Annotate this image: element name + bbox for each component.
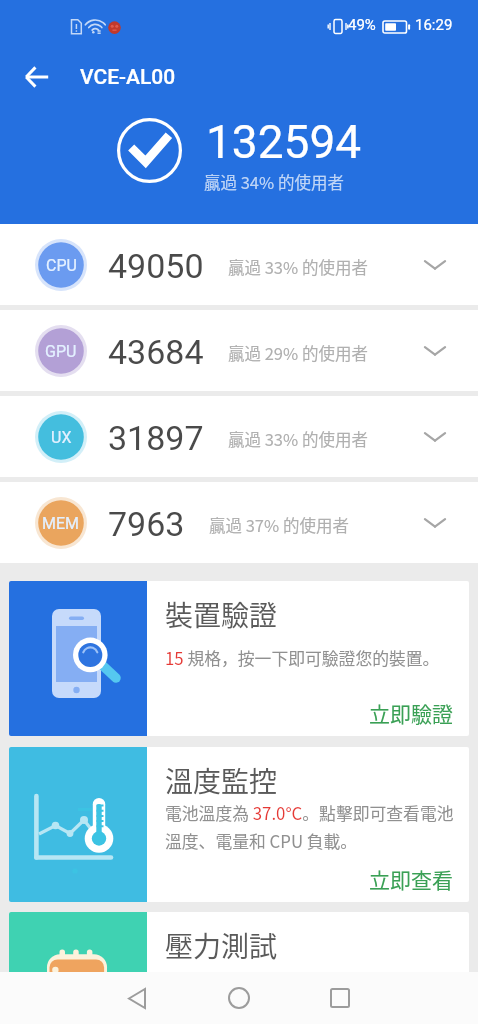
staticText: 43684 [108, 332, 204, 372]
button[interactable]: 壓力測試 [9, 912, 469, 1024]
staticText: 贏過 33% 的使用者 [228, 255, 368, 279]
button[interactable]: 裝置驗證 [9, 581, 469, 736]
button[interactable]: GPU [0, 310, 478, 391]
button[interactable]: CPU [0, 224, 478, 305]
staticText: 立即驗證 [369, 698, 453, 728]
staticText: 15 規格，按一下即可驗證您的裝置。 [165, 646, 440, 670]
staticText: 49050 [108, 246, 204, 286]
staticText: GPU [45, 342, 77, 361]
button[interactable]: Back [14, 55, 60, 99]
staticText: MEM [42, 514, 80, 533]
button[interactable]: Home [209, 978, 269, 1018]
staticText: 贏過 37% 的使用者 [209, 513, 349, 537]
staticText: 31897 [108, 418, 204, 458]
staticText: 49% [348, 16, 376, 34]
staticText: CPU [46, 256, 77, 275]
staticText: 贏過 34% 的使用者 [204, 170, 344, 194]
staticText: 壓力測試 [165, 925, 278, 966]
staticText: 溫度監控 [165, 760, 278, 801]
staticText: 16:29 [415, 16, 453, 34]
staticText: VCE-AL00 [80, 65, 176, 90]
button[interactable]: UX [0, 396, 478, 477]
staticText: 裝置驗證 [165, 594, 278, 635]
staticText: 132594 [206, 115, 362, 169]
staticText: 贏過 33% 的使用者 [228, 427, 368, 451]
staticText: 電池溫度為 37.0°C。點擊即可查看電池溫度、電量和 CPU 負載。 [165, 801, 460, 852]
button[interactable]: 溫度監控 [9, 747, 469, 902]
staticText: 立即查看 [369, 864, 453, 894]
staticText: 7963 [108, 504, 185, 544]
staticText: 贏過 29% 的使用者 [228, 341, 368, 365]
staticText: UX [51, 428, 72, 447]
button[interactable]: Recents [310, 978, 370, 1018]
button[interactable]: Back [107, 978, 167, 1018]
button[interactable]: MEM [0, 482, 478, 563]
